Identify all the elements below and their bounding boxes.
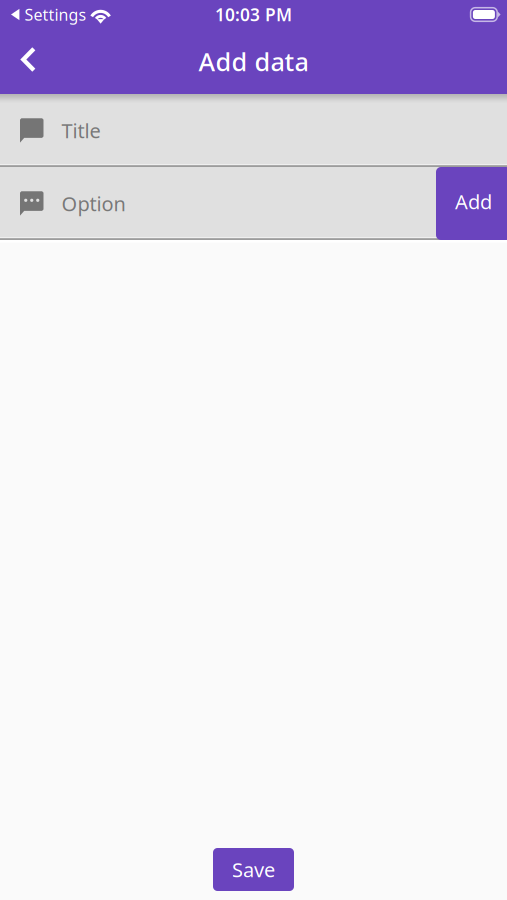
staticText: Add [455, 188, 492, 215]
button[interactable]: Back [0, 32, 51, 90]
staticText: Add data [198, 45, 308, 78]
staticText: Title [61, 117, 100, 144]
staticText: Settings [25, 4, 87, 25]
staticText: 10:03 PM [215, 3, 292, 26]
button[interactable]: Save [213, 848, 294, 891]
staticText: Option [61, 190, 125, 217]
button[interactable]: Add [436, 167, 507, 240]
staticText: Save [232, 856, 275, 883]
